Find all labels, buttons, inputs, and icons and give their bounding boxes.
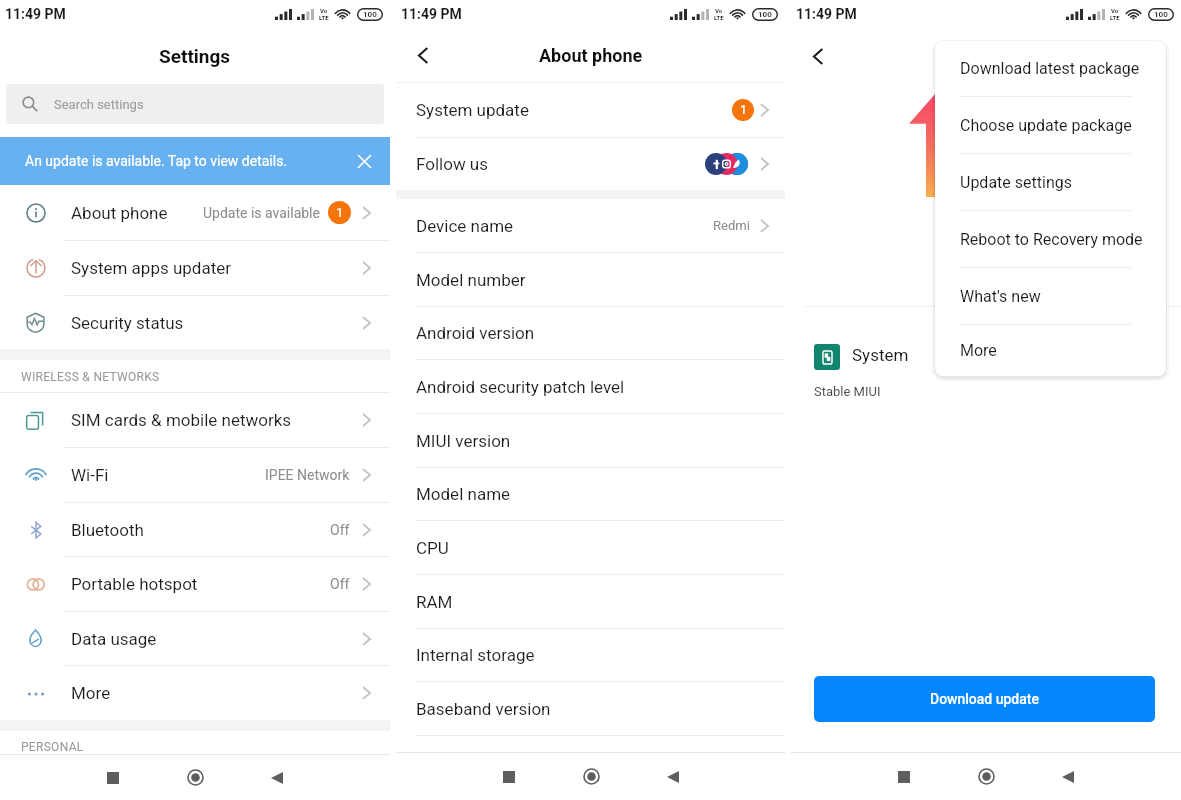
button[interactable]: Search settings xyxy=(6,84,384,124)
staticText: Vo xyxy=(1111,7,1119,14)
staticText: 1 xyxy=(740,103,747,117)
staticText: Choose update package xyxy=(960,116,1132,135)
button[interactable]: System apps updater xyxy=(0,241,390,295)
staticText: Reboot to Recovery mode xyxy=(960,230,1143,249)
button[interactable]: Download update xyxy=(814,676,1155,722)
button[interactable]: Device name xyxy=(396,199,785,252)
button[interactable]: Home xyxy=(565,753,617,800)
staticText: Off xyxy=(330,522,350,538)
button[interactable]: Update settings xyxy=(935,154,1166,210)
staticText: Update settings xyxy=(960,173,1072,192)
staticText: Redmi xyxy=(713,218,750,233)
button[interactable]: MIUI version xyxy=(396,414,785,467)
button[interactable]: More xyxy=(0,666,390,720)
staticText: 11:49 PM xyxy=(796,6,857,22)
staticText: 1 xyxy=(336,205,344,220)
staticText: Device name xyxy=(416,216,514,236)
button[interactable]: Recents xyxy=(878,753,930,800)
staticText: Off xyxy=(330,576,350,592)
button[interactable]: What's new xyxy=(935,268,1166,324)
button[interactable]: Back xyxy=(251,755,303,800)
staticText: MIUI version xyxy=(416,431,511,451)
button[interactable]: Internal storage xyxy=(396,629,785,681)
staticText: Vo xyxy=(715,7,723,14)
staticText: Bluetooth xyxy=(71,520,144,540)
button[interactable]: Android security patch level xyxy=(396,360,785,413)
button[interactable]: RAM xyxy=(396,575,785,628)
staticText: PERSONAL xyxy=(21,740,84,754)
button[interactable]: Recents xyxy=(87,755,139,800)
staticText: Internal storage xyxy=(416,645,535,665)
button[interactable]: Android version xyxy=(396,307,785,359)
staticText: Update is available xyxy=(203,205,320,221)
staticText: 100 xyxy=(363,10,377,19)
button[interactable]: Model number xyxy=(396,253,785,306)
staticText: Security status xyxy=(71,313,184,333)
staticText: 100 xyxy=(1154,10,1168,19)
staticText: Settings xyxy=(159,45,231,67)
staticText: Data usage xyxy=(71,629,157,649)
button[interactable]: More xyxy=(935,325,1166,376)
button[interactable]: Security status xyxy=(0,296,390,349)
button[interactable]: Home xyxy=(169,755,221,800)
staticText: Portable hotspot xyxy=(71,574,198,594)
button[interactable]: Home xyxy=(960,753,1012,800)
staticText: Baseband version xyxy=(416,699,551,719)
staticText: More xyxy=(960,341,997,360)
button[interactable]: Back xyxy=(803,41,833,71)
staticText: 11:49 PM xyxy=(401,6,462,22)
staticText: Android version xyxy=(416,323,535,343)
staticText: IPEE Network xyxy=(265,467,350,483)
staticText: More xyxy=(71,683,111,703)
staticText: CPU xyxy=(416,538,449,558)
staticText: What's new xyxy=(960,287,1041,306)
button[interactable]: Data usage xyxy=(0,612,390,665)
button[interactable]: Dismiss xyxy=(352,149,376,173)
staticText: LTE xyxy=(714,14,724,21)
staticText: System apps updater xyxy=(71,258,232,278)
staticText: Android security patch level xyxy=(416,377,625,397)
button[interactable]: Model name xyxy=(396,468,785,520)
staticText: Stable MIUI xyxy=(814,384,881,399)
button[interactable]: About phone xyxy=(0,185,390,240)
staticText: LTE xyxy=(1110,14,1120,21)
staticText: SIM cards & mobile networks xyxy=(71,410,292,430)
button[interactable]: Back xyxy=(1042,753,1094,800)
button[interactable]: Baseband version xyxy=(396,682,785,735)
staticText: System update xyxy=(416,100,529,120)
button[interactable]: Portable hotspot xyxy=(0,557,390,611)
staticText: System xyxy=(852,345,909,365)
button[interactable]: Back xyxy=(647,753,699,800)
staticText: LTE xyxy=(319,14,329,21)
button[interactable]: Download latest package xyxy=(935,41,1166,96)
button[interactable]: Wi-Fi xyxy=(0,448,390,502)
staticText: WIRELESS & NETWORKS xyxy=(21,370,160,384)
staticText: Wi-Fi xyxy=(71,465,109,485)
staticText: About phone xyxy=(71,203,168,223)
button[interactable]: Recents xyxy=(483,753,535,800)
staticText: Vo xyxy=(320,7,328,14)
button[interactable]: An update is available. Tap to view deta… xyxy=(0,137,390,185)
button[interactable]: Choose update package xyxy=(935,97,1166,153)
button[interactable]: Follow us xyxy=(396,138,785,190)
button[interactable]: Reboot to Recovery mode xyxy=(935,211,1166,267)
staticText: About phone xyxy=(539,45,643,66)
staticText: Model number xyxy=(416,270,526,290)
button[interactable]: SIM cards & mobile networks xyxy=(0,393,390,447)
staticText: Download update xyxy=(930,691,1039,707)
button[interactable]: Back xyxy=(408,40,438,70)
staticText: Search settings xyxy=(54,97,144,112)
staticText: Download latest package xyxy=(960,59,1140,78)
staticText: Follow us xyxy=(416,154,489,174)
staticText: Model name xyxy=(416,484,511,504)
staticText: 100 xyxy=(758,10,772,19)
button[interactable]: System update xyxy=(396,83,785,137)
button[interactable]: Bluetooth xyxy=(0,503,390,556)
staticText: An update is available. Tap to view deta… xyxy=(25,153,288,169)
button[interactable]: CPU xyxy=(396,521,785,574)
staticText: RAM xyxy=(416,592,453,612)
staticText: 11:49 PM xyxy=(5,6,66,22)
